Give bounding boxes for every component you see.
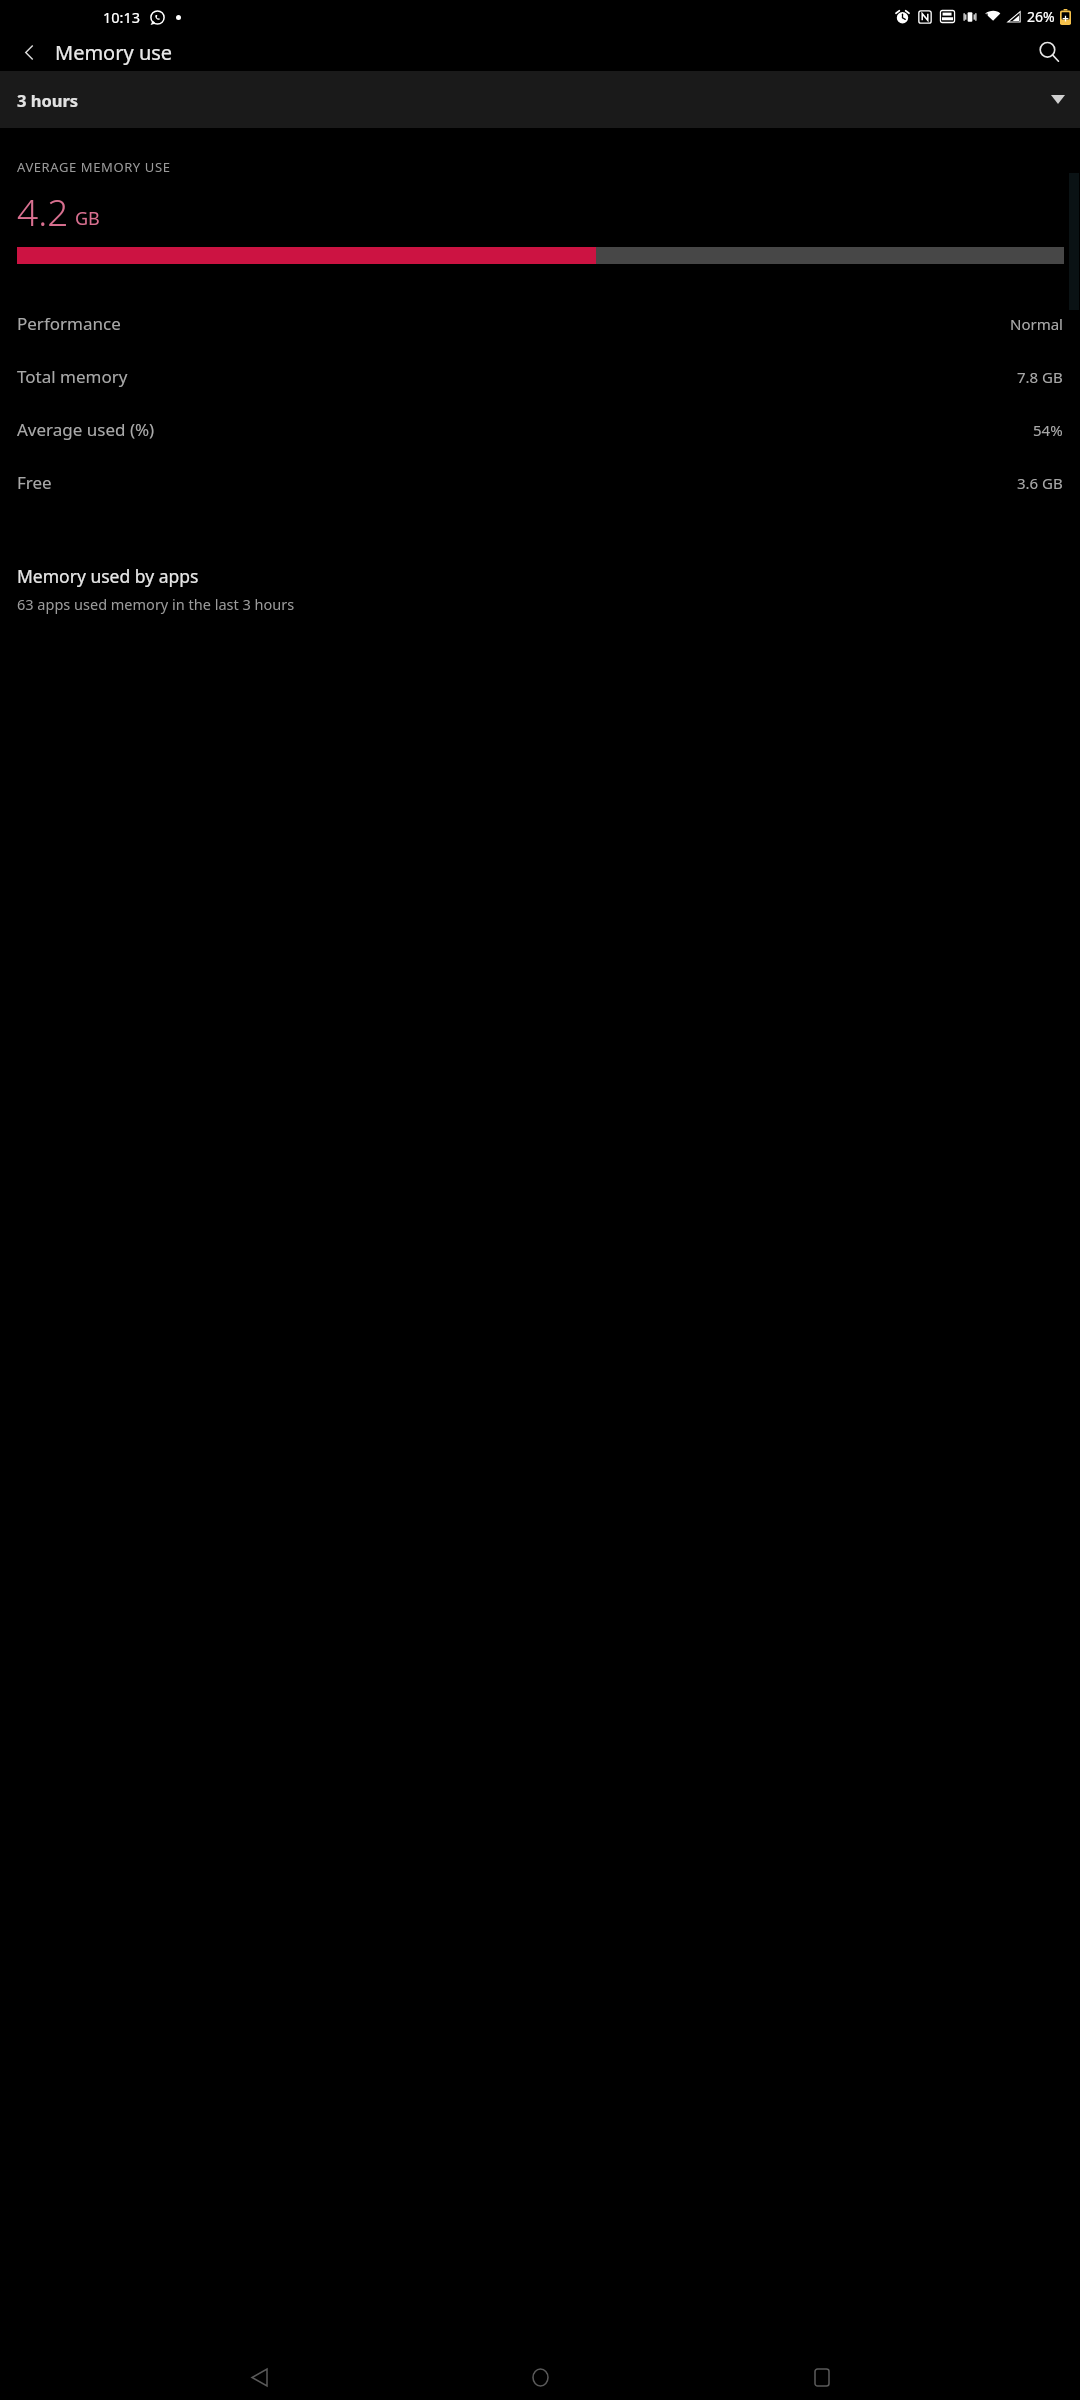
staticText: AVERAGE MEMORY USE bbox=[17, 158, 171, 176]
staticText: Memory use bbox=[55, 39, 173, 66]
button[interactable]: Total memory bbox=[0, 350, 1080, 403]
staticText: 10:13 bbox=[103, 7, 141, 27]
staticText: Memory used by apps bbox=[17, 564, 199, 588]
button[interactable]: Search bbox=[1029, 33, 1069, 71]
staticText: Performance bbox=[17, 312, 121, 335]
button[interactable]: 3 hours bbox=[0, 71, 1080, 128]
staticText: 3 hours bbox=[17, 89, 79, 111]
staticText: GB bbox=[75, 206, 100, 231]
staticText: Average used (%) bbox=[17, 418, 155, 441]
staticText: Total memory bbox=[17, 365, 128, 388]
button[interactable]: Back bbox=[10, 33, 48, 71]
staticText: 3.6 GB bbox=[1017, 473, 1063, 493]
button[interactable]: Average used (%) bbox=[0, 403, 1080, 456]
staticText: Free bbox=[17, 471, 52, 494]
staticText: 54% bbox=[1033, 420, 1063, 440]
button[interactable]: Recent apps bbox=[799, 2354, 845, 2400]
button[interactable]: Home bbox=[517, 2354, 563, 2400]
button[interactable]: Back bbox=[236, 2354, 282, 2400]
button[interactable]: Memory used by apps bbox=[0, 562, 1080, 622]
staticText: 63 apps used memory in the last 3 hours bbox=[17, 594, 295, 614]
button[interactable]: Free bbox=[0, 456, 1080, 509]
staticText: 26% bbox=[1027, 7, 1055, 26]
staticText: Normal bbox=[1010, 314, 1063, 334]
button[interactable]: Performance bbox=[0, 297, 1080, 350]
staticText: 4.2 bbox=[17, 186, 69, 236]
staticText: 7.8 GB bbox=[1017, 367, 1063, 387]
